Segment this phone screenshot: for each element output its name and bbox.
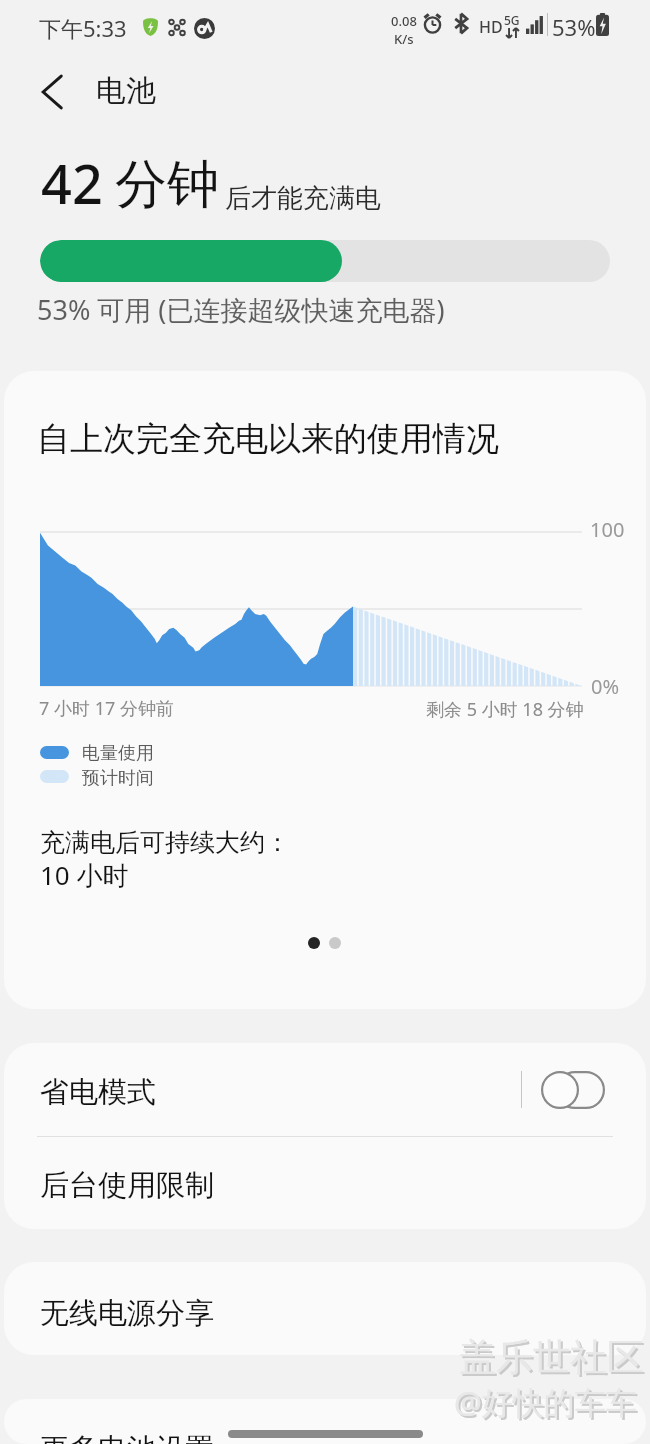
staticText: 预计时间 — [82, 767, 154, 790]
staticText: 自上次完全充电以来的使用情况 — [37, 418, 499, 460]
staticText: 42 — [41, 146, 103, 220]
staticText: 更多电池设置 — [40, 1431, 214, 1444]
staticText: 53% 可用 (已连接超级快速充电器) — [37, 291, 445, 328]
button[interactable]: Back — [29, 69, 75, 115]
staticText: 7 小时 17 分钟前 — [39, 696, 174, 721]
staticText: 100 — [590, 516, 625, 543]
staticText: 无线电源分享 — [40, 1295, 214, 1332]
staticText: 0.08 — [391, 12, 417, 30]
staticText: 下午5:33 — [39, 13, 127, 43]
staticText: 0% — [591, 673, 620, 700]
staticText: 盖乐世社区 — [459, 1334, 644, 1381]
button[interactable]: 无线电源分享 — [4, 1262, 646, 1355]
staticText: 后台使用限制 — [40, 1167, 214, 1204]
staticText: 5G — [504, 12, 520, 28]
staticText: 充满电后可持续大约： — [40, 827, 290, 858]
button[interactable]: 省电模式 — [541, 1071, 605, 1109]
staticText: 电池 — [96, 72, 156, 110]
staticText: 分钟 — [115, 152, 219, 218]
button[interactable]: 后台使用限制 — [4, 1136, 646, 1229]
staticText: 10 小时 — [40, 857, 129, 893]
staticText: 剩余 5 小时 18 分钟 — [426, 697, 584, 722]
staticText: K/s — [394, 30, 414, 48]
staticText: 后才能充满电 — [225, 182, 381, 215]
staticText: 省电模式 — [40, 1074, 156, 1111]
button[interactable]: 省电模式 — [4, 1043, 646, 1136]
staticText: @好快的车车 — [454, 1381, 637, 1423]
staticText: 53% — [552, 12, 596, 42]
staticText: 电量使用 — [82, 742, 154, 765]
staticText: HD — [479, 16, 503, 38]
staticText: 盖乐世社区 — [461, 1336, 646, 1383]
button[interactable]: 更多电池设置 — [4, 1399, 646, 1444]
staticText: @好快的车车 — [456, 1383, 639, 1425]
